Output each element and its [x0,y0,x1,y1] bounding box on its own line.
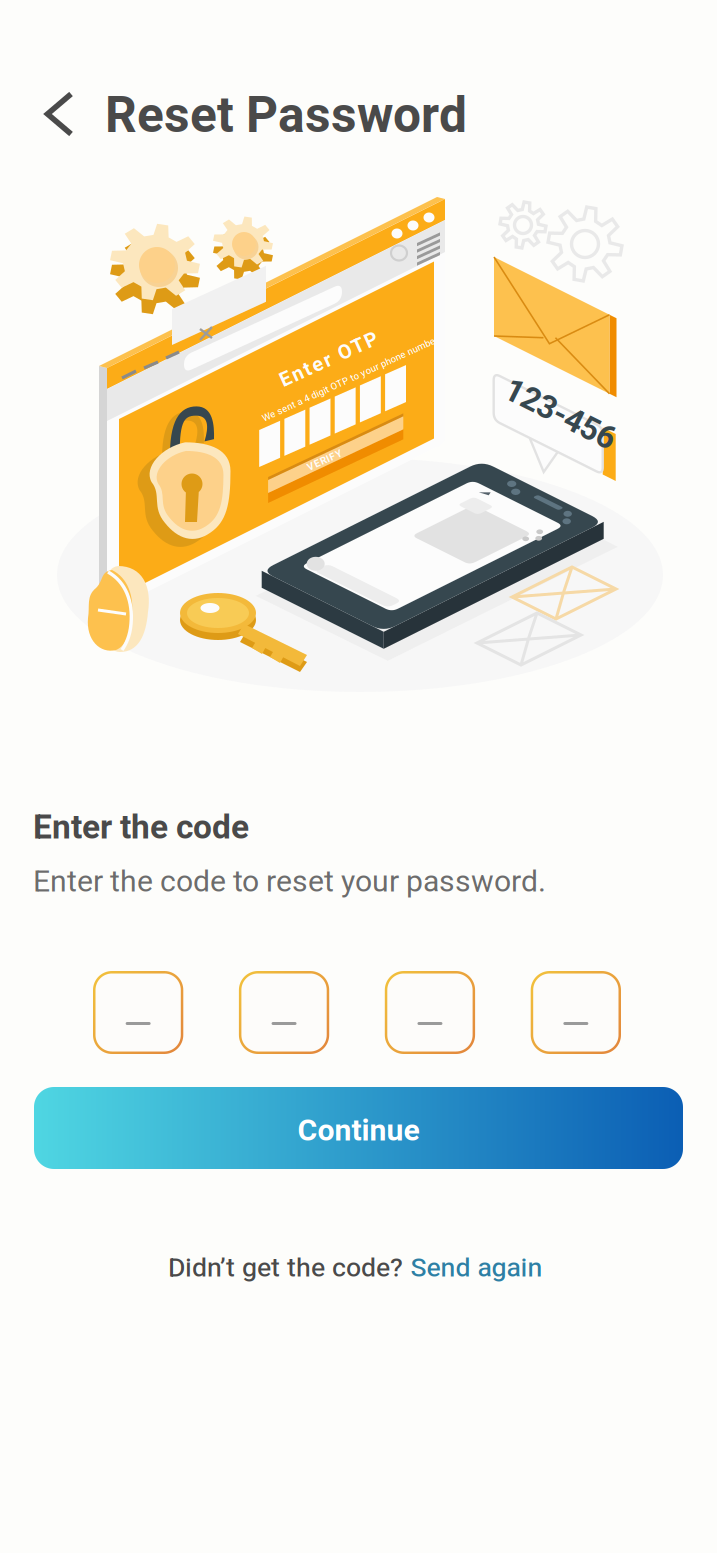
staticText: 123-456 [500,391,620,438]
staticText: Continue [297,1109,419,1153]
button[interactable]: Back [28,79,92,149]
staticText: We sent a 4 digit OTP to your phone numb… [254,372,446,386]
staticText: Didn’t get the code? [168,1248,403,1288]
button[interactable]: Continue [34,1087,683,1169]
staticText: Enter the code to reset your password. [33,860,546,904]
staticText: Send again [410,1248,542,1288]
staticText: VERIFY [306,453,343,468]
staticText: Enter OTP [276,345,382,374]
button[interactable]: Send again [410,1248,542,1288]
staticText: Reset Password [105,80,467,153]
staticText: Enter the code [33,803,249,853]
